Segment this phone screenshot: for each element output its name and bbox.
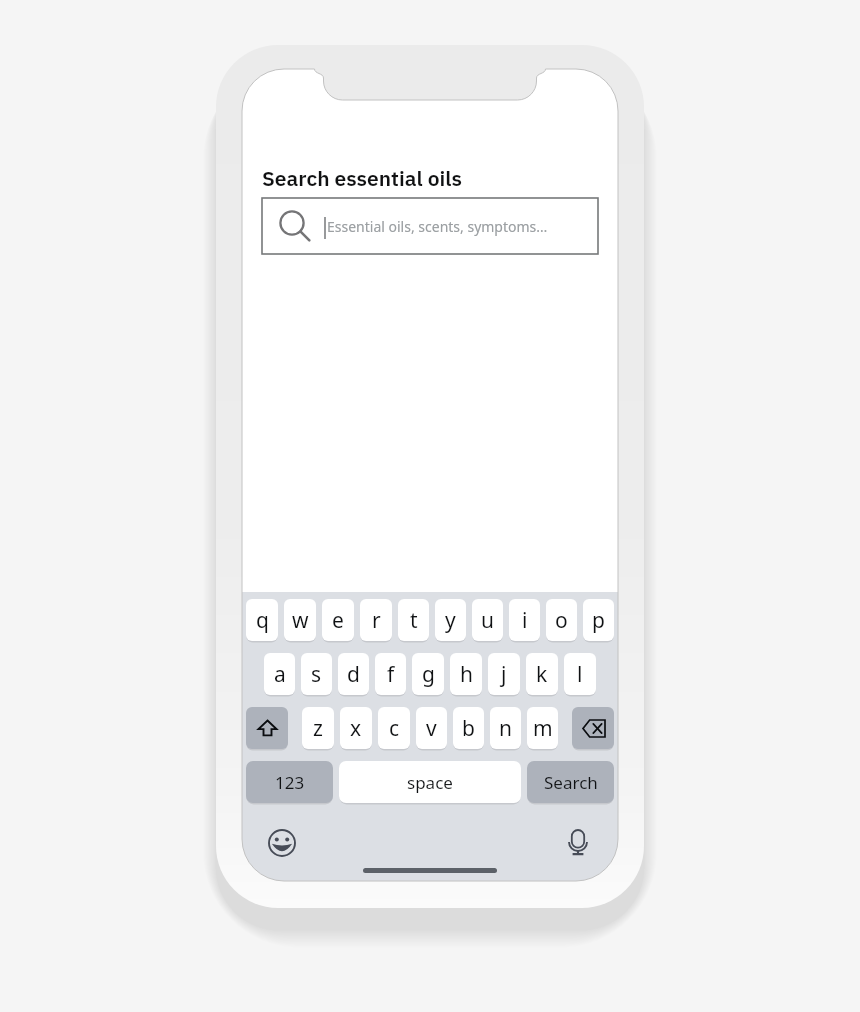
button[interactable]: a (264, 653, 295, 697)
staticText: z (313, 714, 323, 743)
button[interactable]: Voice input (562, 827, 594, 859)
staticText: b (462, 714, 475, 743)
button[interactable]: Shift (246, 707, 288, 751)
staticText: c (389, 714, 400, 743)
button[interactable]: Emoji (266, 827, 298, 859)
button[interactable]: l (564, 653, 596, 697)
button[interactable]: c (378, 707, 410, 751)
staticText: Search essential oils (262, 163, 462, 195)
button[interactable]: d (338, 653, 369, 697)
staticText: g (422, 660, 435, 689)
staticText: v (426, 714, 437, 743)
staticText: j (501, 660, 507, 689)
staticText: 123 (275, 771, 305, 794)
staticText: p (592, 606, 605, 635)
staticText: u (481, 606, 494, 635)
staticText: m (533, 714, 553, 743)
button[interactable]: Search (527, 761, 614, 805)
button[interactable]: w (284, 599, 316, 643)
button[interactable]: p (583, 599, 614, 643)
staticText: o (555, 606, 568, 635)
button[interactable]: Essential oils, scents, symptoms… (262, 198, 598, 254)
button[interactable]: i (509, 599, 540, 643)
staticText: e (332, 606, 344, 635)
staticText: r (372, 606, 381, 635)
button[interactable]: o (546, 599, 577, 643)
button[interactable]: n (490, 707, 521, 751)
button[interactable]: f (375, 653, 406, 697)
button[interactable]: b (453, 707, 484, 751)
button[interactable]: Backspace (572, 707, 614, 751)
button[interactable]: 123 (246, 761, 333, 805)
staticText: k (536, 660, 548, 689)
staticText: l (577, 660, 583, 689)
staticText: i (522, 606, 528, 635)
button[interactable]: j (488, 653, 520, 697)
button[interactable]: v (416, 707, 447, 751)
staticText: s (311, 660, 322, 689)
staticText: d (347, 660, 360, 689)
staticText: x (350, 714, 362, 743)
button[interactable]: x (340, 707, 372, 751)
button[interactable]: e (322, 599, 354, 643)
button[interactable]: z (302, 707, 334, 751)
button[interactable]: g (412, 653, 444, 697)
staticText: f (387, 660, 395, 689)
staticText: n (499, 714, 512, 743)
button[interactable]: k (526, 653, 558, 697)
staticText: t (410, 606, 418, 635)
staticText: Essential oils, scents, symptoms… (327, 217, 548, 236)
button[interactable]: q (246, 599, 278, 643)
button[interactable]: r (360, 599, 392, 643)
staticText: Search (544, 771, 598, 794)
staticText: a (274, 660, 286, 689)
button[interactable]: m (527, 707, 558, 751)
staticText: q (256, 606, 269, 635)
staticText: y (445, 606, 456, 635)
button[interactable]: y (435, 599, 466, 643)
button[interactable]: space (339, 761, 521, 805)
button[interactable]: h (450, 653, 482, 697)
button[interactable]: t (398, 599, 429, 643)
staticText: space (407, 771, 453, 794)
button[interactable]: u (472, 599, 503, 643)
staticText: w (292, 606, 309, 635)
staticText: h (460, 660, 473, 689)
button[interactable]: s (301, 653, 332, 697)
